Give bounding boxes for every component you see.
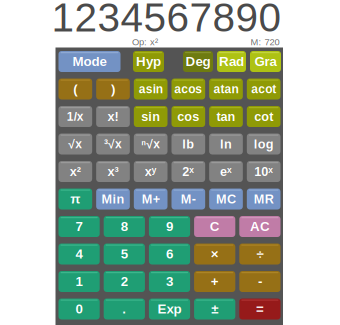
button[interactable]: 7 bbox=[58, 216, 100, 237]
staticText: M+ bbox=[142, 192, 160, 206]
staticText: 0 bbox=[76, 302, 83, 316]
button[interactable]: 0 bbox=[58, 298, 100, 319]
button[interactable]: M+ bbox=[134, 188, 167, 209]
button[interactable]: 2 bbox=[104, 271, 145, 292]
button[interactable]: C bbox=[194, 216, 235, 237]
button[interactable]: asin bbox=[134, 78, 167, 99]
button[interactable]: 6 bbox=[149, 243, 190, 264]
button[interactable]: tan bbox=[209, 106, 243, 127]
staticText: MC bbox=[216, 192, 236, 206]
button[interactable]: × bbox=[194, 243, 235, 264]
staticText: Op: x² bbox=[132, 37, 158, 47]
staticText: sin bbox=[141, 109, 160, 124]
button[interactable]: Min bbox=[96, 188, 130, 209]
staticText: 10ˣ bbox=[254, 164, 273, 179]
staticText: ( bbox=[73, 82, 77, 96]
button[interactable]: 2ˣ bbox=[171, 161, 205, 182]
staticText: AC bbox=[250, 219, 270, 234]
staticText: log bbox=[254, 137, 274, 151]
staticText: x³ bbox=[107, 164, 118, 179]
staticText: Exp bbox=[157, 302, 181, 316]
staticText: . bbox=[122, 302, 126, 316]
button[interactable]: MC bbox=[209, 188, 243, 209]
staticText: 9 bbox=[166, 219, 173, 234]
button[interactable]: Rad bbox=[217, 51, 246, 72]
button[interactable]: = bbox=[239, 298, 280, 319]
button[interactable]: atan bbox=[209, 78, 243, 99]
button[interactable]: Exp bbox=[149, 298, 190, 319]
staticText: acot bbox=[251, 82, 276, 96]
staticText: C bbox=[210, 219, 220, 234]
button[interactable]: ³√x bbox=[96, 133, 130, 154]
staticText: ⁿ√x bbox=[141, 137, 160, 151]
staticText: ) bbox=[111, 82, 115, 96]
staticText: 1/x bbox=[67, 110, 84, 123]
button[interactable]: 8 bbox=[104, 216, 145, 237]
staticText: cos bbox=[177, 109, 199, 124]
button[interactable]: Hyp bbox=[133, 51, 164, 72]
button[interactable]: 5 bbox=[104, 243, 145, 264]
staticText: tan bbox=[216, 109, 235, 124]
button[interactable]: sin bbox=[134, 106, 167, 127]
staticText: ± bbox=[211, 302, 218, 316]
button[interactable]: 9 bbox=[149, 216, 190, 237]
staticText: 6 bbox=[166, 247, 173, 261]
button[interactable]: xʸ bbox=[134, 161, 167, 182]
staticText: Min bbox=[101, 192, 124, 206]
button[interactable]: M- bbox=[171, 188, 205, 209]
button[interactable]: ) bbox=[96, 78, 130, 99]
button[interactable]: + bbox=[194, 271, 235, 292]
button[interactable]: - bbox=[239, 271, 280, 292]
staticText: eˣ bbox=[220, 164, 232, 179]
button[interactable]: cot bbox=[247, 106, 280, 127]
staticText: × bbox=[211, 247, 219, 261]
button[interactable]: lb bbox=[171, 133, 205, 154]
button[interactable]: cos bbox=[171, 106, 205, 127]
button[interactable]: 4 bbox=[58, 243, 100, 264]
button[interactable]: x² bbox=[58, 161, 92, 182]
button[interactable]: ± bbox=[194, 298, 235, 319]
staticText: 8 bbox=[121, 219, 128, 234]
button[interactable]: 1/x bbox=[58, 106, 92, 127]
button[interactable]: acot bbox=[247, 78, 280, 99]
staticText: M- bbox=[181, 192, 196, 206]
staticText: Mode bbox=[72, 54, 106, 69]
button[interactable]: Mode bbox=[58, 51, 120, 72]
staticText: Deg bbox=[185, 54, 210, 69]
staticText: Gra bbox=[254, 54, 276, 69]
staticText: x² bbox=[70, 164, 81, 179]
button[interactable]: √x bbox=[58, 133, 92, 154]
button[interactable]: x! bbox=[96, 106, 130, 127]
staticText: 1234567890 bbox=[51, 0, 281, 40]
button[interactable]: acos bbox=[171, 78, 205, 99]
button[interactable]: π bbox=[58, 188, 92, 209]
staticText: √x bbox=[68, 137, 82, 151]
staticText: asin bbox=[139, 82, 163, 96]
staticText: x! bbox=[107, 109, 118, 124]
button[interactable]: ÷ bbox=[239, 243, 280, 264]
button[interactable]: ln bbox=[209, 133, 243, 154]
staticText: ln bbox=[220, 137, 232, 151]
staticText: 2 bbox=[121, 274, 128, 289]
button[interactable]: ⁿ√x bbox=[134, 133, 167, 154]
staticText: + bbox=[211, 274, 219, 289]
staticText: atan bbox=[213, 82, 238, 96]
button[interactable]: log bbox=[247, 133, 280, 154]
staticText: acos bbox=[174, 82, 202, 96]
button[interactable]: 1 bbox=[58, 271, 100, 292]
button[interactable]: 10ˣ bbox=[247, 161, 280, 182]
staticText: cot bbox=[254, 109, 273, 124]
button[interactable]: Deg bbox=[183, 51, 213, 72]
button[interactable]: eˣ bbox=[209, 161, 243, 182]
staticText: 2ˣ bbox=[182, 164, 194, 179]
button[interactable]: AC bbox=[239, 216, 280, 237]
button[interactable]: Gra bbox=[250, 51, 281, 72]
button[interactable]: 3 bbox=[149, 271, 190, 292]
button[interactable]: . bbox=[104, 298, 145, 319]
button[interactable]: x³ bbox=[96, 161, 130, 182]
staticText: M: 720 bbox=[250, 37, 279, 47]
staticText: 7 bbox=[76, 219, 83, 234]
button[interactable]: MR bbox=[247, 188, 280, 209]
button[interactable]: ( bbox=[58, 78, 92, 99]
staticText: - bbox=[258, 274, 262, 289]
